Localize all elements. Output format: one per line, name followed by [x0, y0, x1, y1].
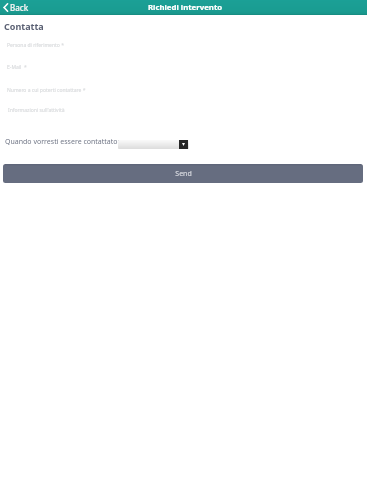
staticText: Send — [175, 169, 192, 179]
staticText: Persona di riferimento * — [7, 42, 64, 49]
staticText: Back — [10, 2, 29, 13]
staticText: E-Mail * — [7, 64, 27, 71]
staticText: Contatta — [4, 20, 44, 32]
button[interactable]: Numero a cui poterti contattare * — [0, 84, 367, 96]
button[interactable]: Seleziona quando essere contattato — [118, 140, 189, 149]
button[interactable]: Informazioni sull'attività — [0, 104, 367, 116]
staticText: Numero a cui poterti contattare * — [7, 87, 86, 94]
staticText: Richiedi intervento — [148, 2, 223, 13]
button[interactable]: Back — [0, 1, 33, 14]
button[interactable]: Send — [3, 164, 363, 183]
button[interactable]: Persona di riferimento * — [0, 39, 367, 51]
staticText: Informazioni sull'attività — [8, 107, 65, 114]
staticText: Quando vorresti essere contattato: — [5, 137, 120, 147]
